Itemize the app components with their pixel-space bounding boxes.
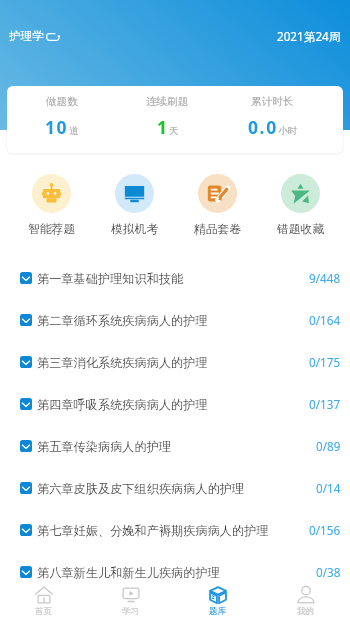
staticText: 累计时长 bbox=[251, 95, 294, 108]
staticText: 题库 bbox=[209, 606, 227, 617]
button[interactable]: 错题收藏 bbox=[259, 174, 342, 237]
staticText: 第七章妊娠、分娩和产褥期疾病病人的护理 bbox=[37, 523, 269, 538]
staticText: 第四章呼吸系统疾病病人的护理 bbox=[37, 397, 208, 412]
other: 切换科目 bbox=[46, 31, 61, 43]
staticText: 模拟机考 bbox=[111, 222, 159, 237]
staticText: 道 bbox=[69, 125, 79, 137]
staticText: 精品套卷 bbox=[194, 222, 242, 237]
button[interactable]: 题库 bbox=[174, 580, 262, 622]
button[interactable]: 精品套卷 bbox=[176, 174, 259, 237]
staticText: 第六章皮肤及皮下组织疾病病人的护理 bbox=[37, 481, 245, 496]
staticText: 第八章新生儿和新生儿疾病的护理 bbox=[37, 565, 220, 580]
staticText: 连续刷题 bbox=[146, 95, 189, 108]
staticText: 错题收藏 bbox=[277, 222, 325, 237]
button[interactable]: 模拟机考 bbox=[93, 174, 176, 237]
staticText: 第二章循环系统疾病病人的护理 bbox=[37, 313, 208, 328]
staticText: 10 bbox=[45, 115, 69, 139]
button[interactable]: 护理学 bbox=[9, 29, 61, 44]
staticText: 1 bbox=[157, 115, 169, 139]
button[interactable]: 第二章循环系统疾病病人的护理 bbox=[0, 299, 350, 341]
staticText: 做题数 bbox=[46, 95, 78, 108]
staticText: 0/14 bbox=[316, 480, 341, 496]
staticText: 天 bbox=[169, 125, 179, 137]
button[interactable]: 智能荐题 bbox=[10, 174, 93, 237]
staticText: 0/175 bbox=[309, 354, 341, 370]
staticText: 0/38 bbox=[316, 564, 341, 580]
button[interactable]: 第四章呼吸系统疾病病人的护理 bbox=[0, 383, 350, 425]
staticText: 第三章消化系统疾病病人的护理 bbox=[37, 355, 208, 370]
staticText: 0/89 bbox=[316, 438, 341, 454]
staticText: 0.0 bbox=[248, 115, 278, 139]
staticText: 首页 bbox=[35, 606, 53, 617]
staticText: 第五章传染病病人的护理 bbox=[37, 439, 172, 454]
staticText: 9/448 bbox=[309, 270, 341, 286]
button[interactable]: 第八章新生儿和新生儿疾病的护理 bbox=[0, 551, 350, 593]
staticText: 0/164 bbox=[309, 312, 341, 328]
button[interactable]: 首页 bbox=[0, 580, 87, 622]
staticText: 第一章基础护理知识和技能 bbox=[37, 271, 184, 286]
button[interactable]: 第一章基础护理知识和技能 bbox=[0, 257, 350, 299]
staticText: 小时 bbox=[278, 125, 297, 137]
button[interactable]: 学习 bbox=[87, 580, 174, 622]
button[interactable]: 第五章传染病病人的护理 bbox=[0, 425, 350, 467]
button[interactable]: 第六章皮肤及皮下组织疾病病人的护理 bbox=[0, 467, 350, 509]
staticText: 智能荐题 bbox=[28, 222, 76, 237]
button[interactable]: 第三章消化系统疾病病人的护理 bbox=[0, 341, 350, 383]
staticText: 护理学 bbox=[9, 29, 45, 44]
staticText: 2021第24周 bbox=[277, 28, 341, 44]
staticText: 0/156 bbox=[309, 522, 341, 538]
staticText: 0/137 bbox=[309, 396, 341, 412]
button[interactable]: 第七章妊娠、分娩和产褥期疾病病人的护理 bbox=[0, 509, 350, 551]
staticText: 我的 bbox=[297, 606, 315, 617]
staticText: 学习 bbox=[122, 606, 140, 617]
button[interactable]: 我的 bbox=[262, 580, 350, 622]
